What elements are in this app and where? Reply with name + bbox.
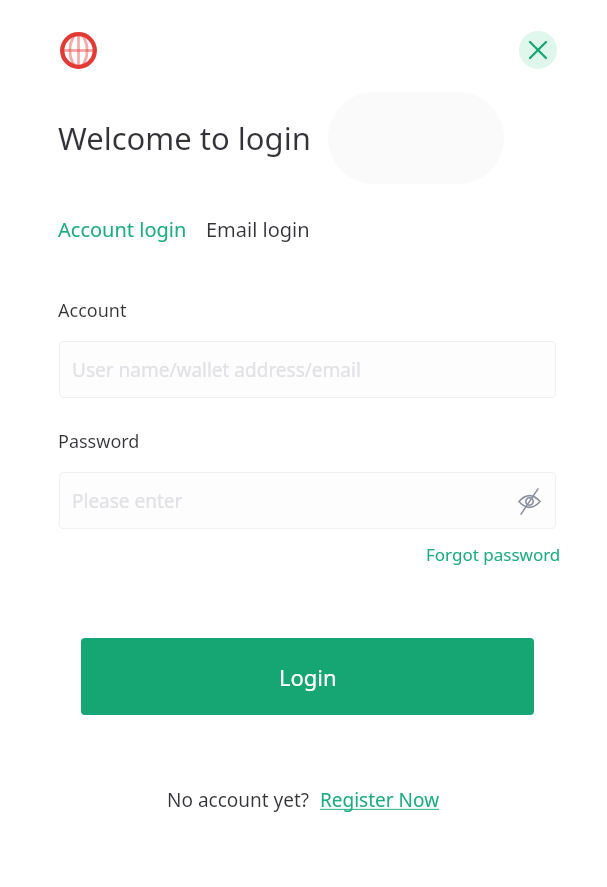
staticText: Forgot password [426, 543, 561, 566]
staticText: Password [58, 429, 140, 454]
button[interactable]: Language [58, 30, 98, 70]
button[interactable]: Show password [515, 487, 543, 515]
button[interactable]: Please enter [59, 472, 556, 529]
button[interactable]: User name/wallet address/email [59, 341, 556, 398]
button[interactable]: Email login [206, 216, 310, 243]
staticText: User name/wallet address/email [72, 357, 361, 383]
staticText: No account yet? [167, 787, 310, 813]
button[interactable]: Account login [58, 216, 187, 243]
button[interactable]: Close [519, 31, 557, 69]
staticText: Account login [58, 216, 187, 243]
staticText: Email login [206, 216, 310, 243]
button[interactable]: Register Now [320, 787, 440, 813]
staticText: Register Now [320, 787, 440, 813]
staticText: Login [279, 662, 337, 692]
staticText: Account [58, 298, 127, 323]
staticText: Please enter [72, 488, 183, 514]
staticText: Welcome to login [58, 117, 311, 159]
button[interactable]: Login [81, 638, 534, 715]
button[interactable]: Forgot password [420, 541, 567, 568]
